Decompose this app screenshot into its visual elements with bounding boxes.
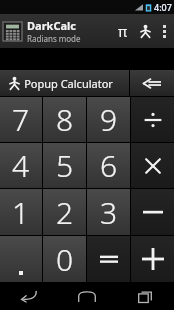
button[interactable]: DarkCalc — [0, 14, 174, 48]
button[interactable]: + — [131, 236, 174, 282]
staticText: 3 — [100, 192, 118, 233]
button[interactable] — [0, 236, 42, 282]
button[interactable]: 0 — [43, 236, 86, 282]
button[interactable]: Popup Calculator — [0, 70, 129, 96]
staticText: 5 — [56, 145, 74, 186]
button[interactable]: = — [87, 236, 130, 282]
staticText: 4:07 — [154, 1, 172, 13]
staticText: 9 — [100, 99, 118, 140]
button[interactable]: 8 — [43, 97, 86, 142]
staticText: Popup Calculator — [24, 76, 113, 91]
button[interactable]: 5 — [43, 143, 86, 188]
button[interactable]: 3 — [87, 189, 130, 235]
button[interactable]: Back — [0, 282, 58, 310]
button[interactable]: Backspace — [130, 70, 174, 96]
staticText: 8 — [56, 99, 74, 140]
staticText: Radians mode — [27, 33, 81, 44]
staticText: 4 — [12, 145, 30, 186]
staticText: DarkCalc — [27, 18, 76, 33]
staticText: π — [118, 22, 128, 41]
staticText: 2 — [56, 192, 74, 233]
button[interactable]: Recent apps — [116, 282, 174, 310]
button[interactable]: − — [131, 189, 174, 235]
button[interactable]: Pi constant — [112, 14, 134, 48]
staticText: 7 — [12, 99, 30, 140]
button[interactable]: Home — [58, 282, 116, 310]
button[interactable]: More options — [156, 14, 172, 48]
button[interactable]: 7 — [0, 97, 42, 142]
button[interactable]: 9 — [87, 97, 130, 142]
button[interactable]: × — [131, 143, 174, 188]
button[interactable]: 6 — [87, 143, 130, 188]
staticText: 0 — [56, 239, 74, 280]
button[interactable]: ÷ — [131, 97, 174, 142]
staticText: 1 — [12, 192, 30, 233]
button[interactable]: 2 — [43, 189, 86, 235]
staticText: 6 — [100, 145, 118, 186]
button[interactable]: 4 — [0, 143, 42, 188]
button[interactable]: 1 — [0, 189, 42, 235]
button[interactable]: Popup calculator — [134, 14, 156, 48]
